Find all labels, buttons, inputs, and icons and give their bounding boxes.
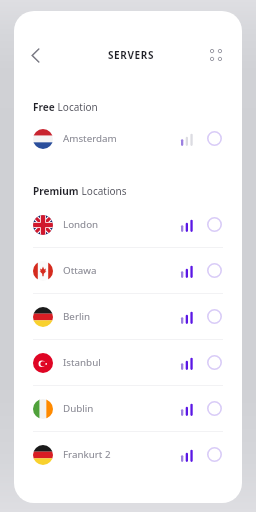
staticText: Frankurt 2 (63, 448, 111, 461)
button[interactable]: London (14, 202, 242, 247)
staticText: Location (55, 100, 98, 114)
button[interactable]: Amsterdam (14, 116, 242, 161)
staticText: Free (33, 100, 55, 114)
button[interactable]: Back (19, 39, 52, 72)
staticText: Ottawa (63, 264, 97, 277)
staticText: London (63, 218, 99, 231)
staticText: Istanbul (63, 356, 101, 369)
button[interactable]: Dublin (14, 386, 242, 431)
button[interactable]: Grid view (202, 41, 230, 69)
staticText: Amsterdam (63, 132, 117, 145)
staticText: SERVERS (108, 48, 155, 62)
button[interactable]: Frankurt 2 (14, 432, 242, 477)
staticText: Premium (33, 184, 79, 198)
button[interactable]: Ottawa (14, 248, 242, 293)
staticText: Locations (79, 184, 127, 198)
staticText: Berlin (63, 310, 91, 323)
staticText: Dublin (63, 402, 94, 415)
button[interactable]: Berlin (14, 294, 242, 339)
button[interactable]: Istanbul (14, 340, 242, 385)
